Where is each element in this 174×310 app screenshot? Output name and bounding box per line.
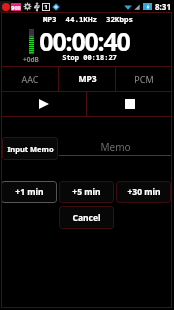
staticText: Cancel bbox=[72, 212, 101, 224]
staticText: MP3 44.1KHz 32Kbps bbox=[43, 14, 133, 24]
staticText: Stop 00:18:27 bbox=[62, 53, 117, 63]
staticText: 1 bbox=[44, 3, 48, 11]
button[interactable]: PCM bbox=[116, 67, 172, 91]
staticText: PCM bbox=[134, 73, 154, 85]
staticText: Memo bbox=[100, 140, 131, 154]
staticText: AAC bbox=[21, 73, 39, 85]
button[interactable]: Cancel bbox=[59, 206, 114, 229]
staticText: +30 min bbox=[127, 186, 161, 198]
staticText: +1 min bbox=[15, 186, 44, 198]
button[interactable]: +5 min bbox=[59, 181, 114, 203]
staticText: 00:00:40 bbox=[39, 24, 130, 58]
button[interactable]: Input Memo bbox=[2, 137, 58, 160]
button[interactable]: +30 min bbox=[116, 181, 171, 203]
button[interactable]: AAC bbox=[1, 67, 58, 91]
button[interactable]: Play bbox=[1, 92, 86, 116]
button[interactable]: +1 min bbox=[1, 181, 57, 203]
staticText: Input Memo bbox=[7, 144, 54, 154]
staticText: 8:31 bbox=[155, 1, 171, 12]
button[interactable]: MP3 bbox=[59, 67, 115, 91]
button[interactable]: Stop bbox=[87, 92, 172, 116]
staticText: +5 min bbox=[72, 186, 101, 198]
button[interactable]: Memo bbox=[59, 137, 171, 156]
staticText: 900 bbox=[11, 4, 21, 11]
staticText: MP3 bbox=[78, 73, 97, 85]
staticText: +0dB bbox=[23, 55, 39, 64]
